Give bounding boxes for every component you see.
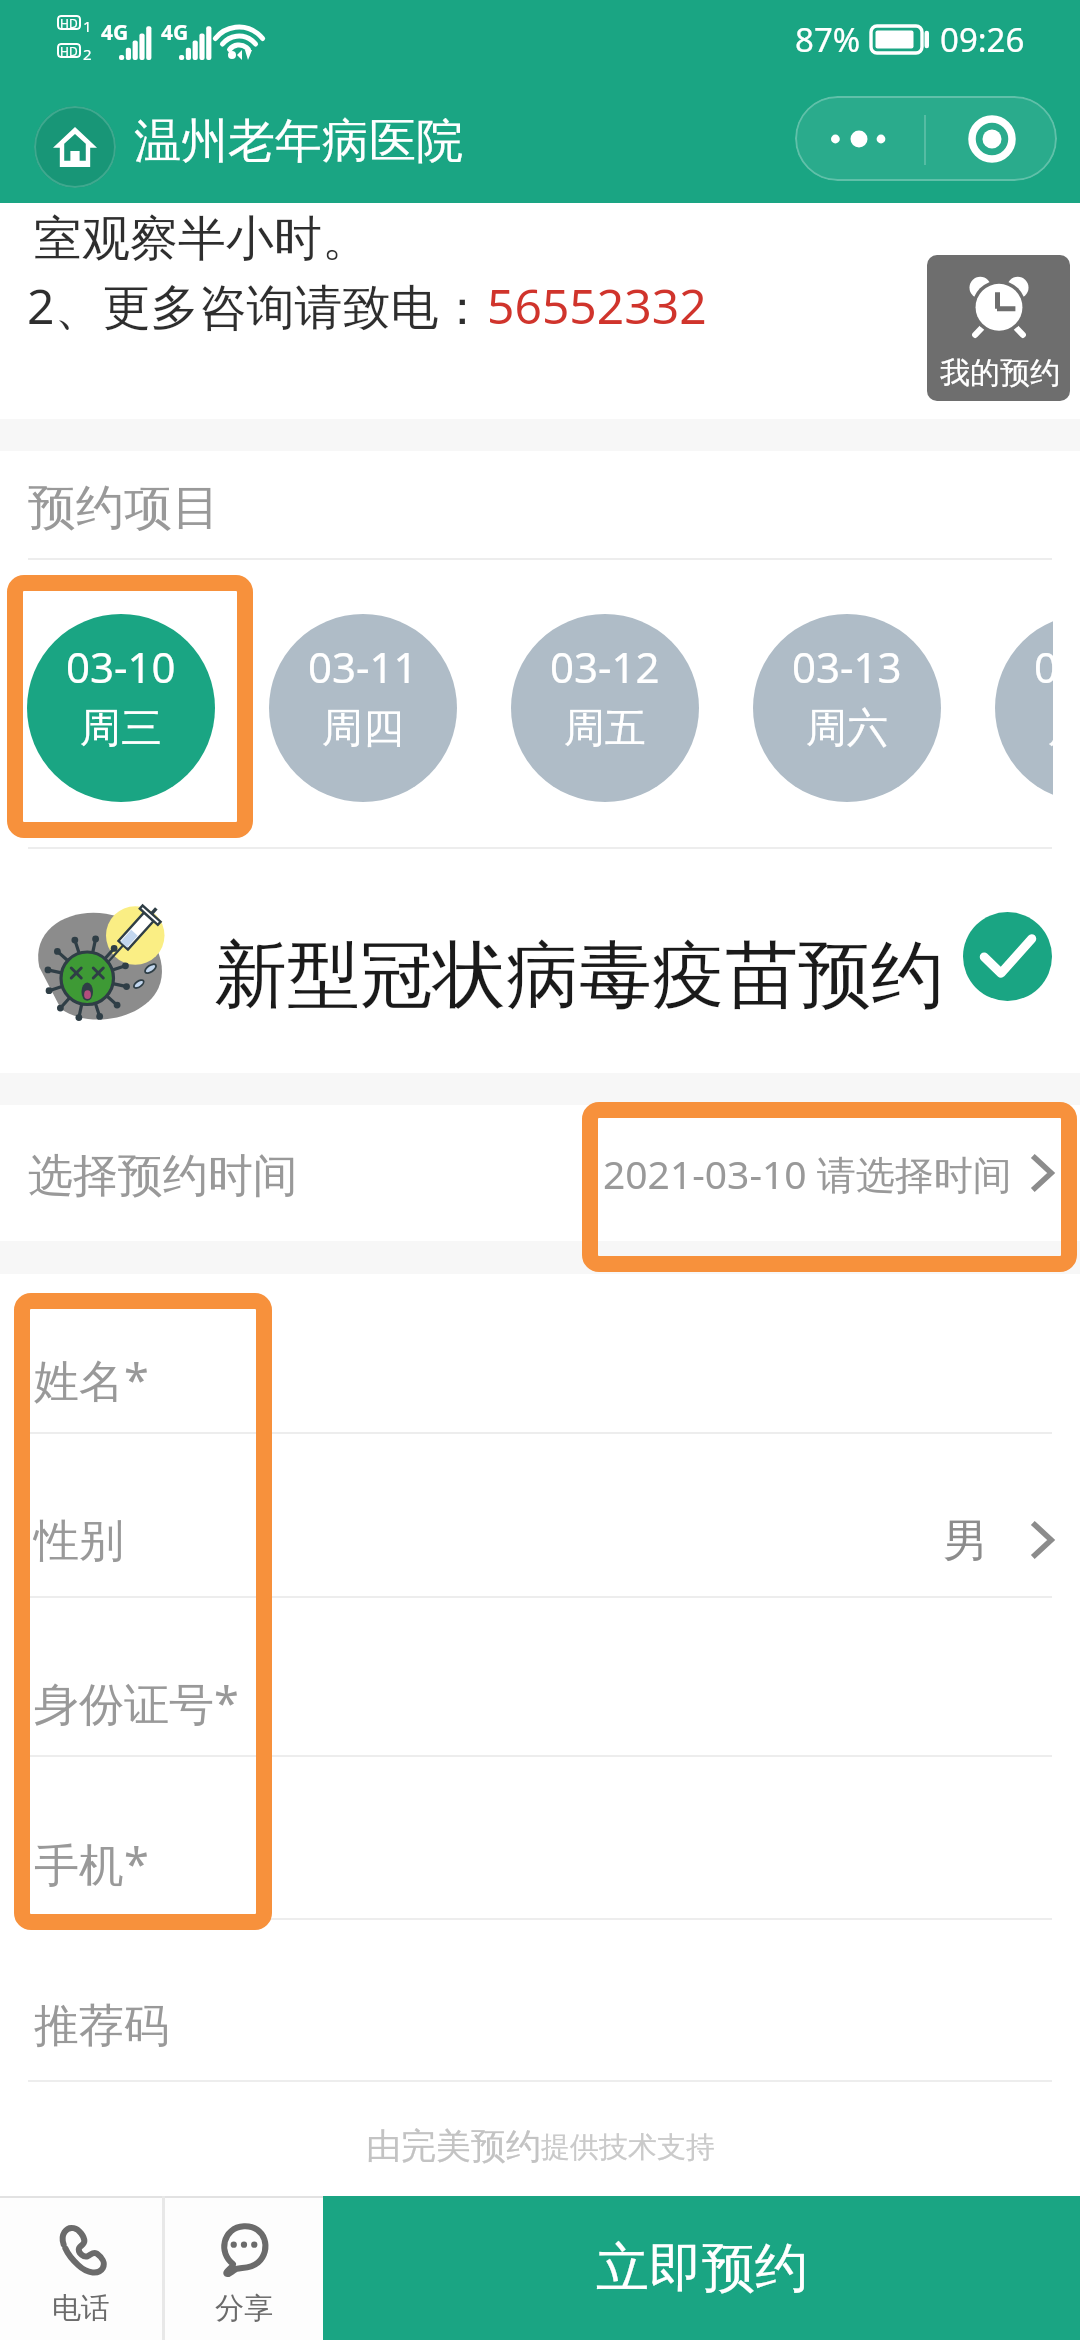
staticText: 56552332 xyxy=(487,273,707,338)
staticText: 03-14 xyxy=(1034,638,1053,695)
button[interactable]: More options xyxy=(795,96,925,181)
button[interactable]: 03-14 xyxy=(995,614,1053,802)
staticText: 03-10 xyxy=(66,638,176,695)
button[interactable]: 电话 xyxy=(0,2196,162,2340)
staticText: 09:26 xyxy=(940,17,1025,62)
button[interactable]: 新型冠状病毒疫苗预约 xyxy=(0,849,1080,1073)
button[interactable]: 身份证号* xyxy=(0,1598,1080,1757)
staticText: 立即预约 xyxy=(596,2235,808,2302)
staticText: 我的预约 xyxy=(940,354,1060,392)
staticText: 周六 xyxy=(806,703,888,755)
staticText: 推荐码 xyxy=(34,1998,169,2055)
button[interactable]: 性别 xyxy=(0,1434,1080,1598)
staticText: 周四 xyxy=(322,703,404,755)
staticText: 选择预约时间 xyxy=(28,1148,298,1205)
staticText: 4G xyxy=(101,18,129,47)
button[interactable]: Home xyxy=(34,106,116,188)
staticText: 电话 xyxy=(52,2290,110,2327)
button[interactable]: 立即预约 xyxy=(323,2196,1080,2340)
staticText: 1 xyxy=(83,16,92,36)
staticText: 03-12 xyxy=(550,638,660,695)
staticText: 03-11 xyxy=(308,638,418,695)
staticText: 预约项目 xyxy=(28,478,220,538)
staticText: 新型冠状病毒疫苗预约 xyxy=(214,930,944,1022)
button[interactable]: 分享 xyxy=(165,2196,323,2340)
button[interactable]: 03-10 xyxy=(27,614,215,802)
staticText: 周三 xyxy=(80,703,162,755)
staticText: 身份证号* xyxy=(34,1672,239,1733)
staticText: 由完美预约 xyxy=(366,2124,541,2168)
staticText: 周日 xyxy=(1048,703,1053,755)
button[interactable]: 手机* xyxy=(0,1757,1080,1920)
staticText: 手机* xyxy=(34,1833,149,1894)
staticText: 姓名* xyxy=(34,1349,149,1410)
staticText: 室观察半小时。 xyxy=(34,209,370,269)
staticText: HD xyxy=(60,15,78,30)
staticText: 2021-03-10 请选择时间 xyxy=(603,1147,1012,1200)
button[interactable]: 03-12 xyxy=(511,614,699,802)
staticText: 分享 xyxy=(215,2290,273,2327)
button[interactable]: 03-11 xyxy=(269,614,457,802)
staticText: 性别 xyxy=(34,1513,124,1570)
button[interactable]: Close mini program xyxy=(927,96,1057,181)
staticText: 男 xyxy=(943,1513,988,1570)
button[interactable]: 选择预约时间 xyxy=(0,1105,1080,1241)
staticText: 87% xyxy=(795,17,861,62)
staticText: HD xyxy=(60,43,78,58)
button[interactable]: 推荐码 xyxy=(0,1920,1080,2082)
staticText: 温州老年病医院 xyxy=(134,112,463,171)
button[interactable]: 姓名* xyxy=(0,1274,1080,1434)
button[interactable]: 我的预约 xyxy=(927,255,1070,401)
staticText: 03-13 xyxy=(792,638,902,695)
staticText: 2 xyxy=(83,44,92,64)
staticText: 提供技术支持 xyxy=(541,2129,715,2166)
button[interactable]: 03-13 xyxy=(753,614,941,802)
staticText: 周五 xyxy=(564,703,646,755)
staticText: 2、更多咨询请致电： xyxy=(27,273,487,339)
staticText: 4G xyxy=(161,18,189,47)
